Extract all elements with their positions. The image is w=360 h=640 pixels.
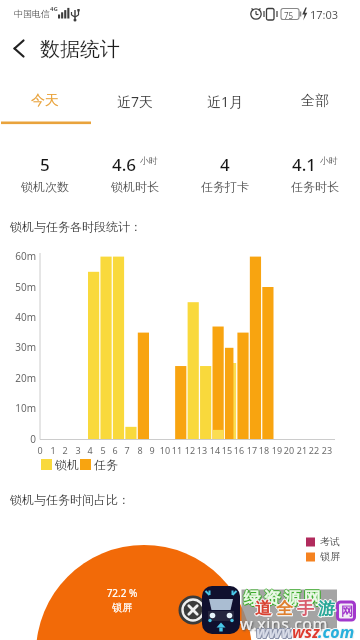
- staticText: wsz: [293, 622, 321, 640]
- staticText: 手: [298, 599, 315, 620]
- staticText: .com: [317, 621, 354, 640]
- staticText: 游: [319, 599, 336, 620]
- staticText: 手: [297, 599, 314, 620]
- button[interactable]: 今天: [0, 77, 90, 125]
- staticText: 2: [56, 444, 74, 456]
- staticText: 17:03: [310, 7, 339, 22]
- staticText: 4: [220, 153, 230, 176]
- staticText: 0: [31, 444, 49, 456]
- staticText: 全: [277, 599, 294, 620]
- staticText: 全部: [301, 92, 329, 110]
- staticText: w.xins.com: [240, 613, 328, 635]
- staticText: 绿资源网: [242, 589, 322, 610]
- staticText: 锁机与任务各时段统计：: [10, 219, 142, 234]
- staticText: 绿资源网: [243, 588, 323, 609]
- staticText: 锁机次数: [21, 179, 69, 194]
- staticText: www.: [255, 621, 297, 640]
- staticText: 30m: [4, 340, 36, 354]
- staticText: 60m: [4, 249, 36, 263]
- staticText: 小时: [140, 155, 158, 166]
- button[interactable]: 近7天: [90, 77, 180, 125]
- button[interactable]: 近1月: [180, 77, 270, 125]
- staticText: www.: [256, 622, 298, 640]
- staticText: 18: [255, 444, 273, 456]
- staticText: .com: [318, 622, 355, 640]
- staticText: 4: [81, 444, 99, 456]
- staticText: .com: [318, 621, 355, 640]
- staticText: www.: [256, 621, 298, 640]
- staticText: wsz: [292, 622, 320, 640]
- staticText: 23: [318, 444, 336, 456]
- staticText: 道: [255, 597, 272, 618]
- button[interactable]: [0, 25, 40, 73]
- staticText: wsz: [293, 621, 321, 640]
- staticText: 10: [156, 444, 174, 456]
- staticText: 22: [305, 444, 323, 456]
- staticText: 72.2 %: [94, 586, 150, 600]
- staticText: 12: [181, 444, 199, 456]
- staticText: 游: [318, 598, 335, 619]
- staticText: 任务打卡: [201, 179, 249, 194]
- staticText: 任务: [94, 457, 118, 472]
- staticText: 近1月: [207, 92, 244, 111]
- staticText: 道: [255, 598, 272, 619]
- staticText: 14: [206, 444, 224, 456]
- staticText: 游: [318, 599, 335, 620]
- staticText: 道: [255, 599, 272, 620]
- staticText: 4.1: [292, 153, 317, 176]
- staticText: 17: [243, 444, 261, 456]
- staticText: 3: [69, 444, 87, 456]
- staticText: 1: [44, 444, 62, 456]
- staticText: 全: [276, 598, 293, 619]
- staticText: 道: [256, 598, 273, 619]
- staticText: 任务时长: [291, 179, 339, 194]
- staticText: 道: [256, 599, 273, 620]
- staticText: 16: [230, 444, 248, 456]
- staticText: 绿资源网: [243, 589, 323, 610]
- staticText: 今天: [31, 92, 59, 110]
- staticText: 40m: [4, 310, 36, 324]
- staticText: 7: [118, 444, 136, 456]
- staticText: 数据统计: [40, 37, 120, 62]
- button[interactable]: 数据统计: [28, 25, 120, 73]
- staticText: www.: [257, 621, 299, 640]
- staticText: .com: [319, 621, 356, 640]
- staticText: .com: [319, 622, 356, 640]
- staticText: 全: [275, 598, 292, 619]
- staticText: 5: [94, 444, 112, 456]
- staticText: 小时: [320, 155, 338, 166]
- button[interactable]: 全部: [270, 77, 360, 125]
- staticText: 4.6: [112, 153, 137, 176]
- staticText: 绿资源网: [242, 588, 322, 609]
- staticText: 9: [143, 444, 161, 456]
- staticText: 手: [297, 597, 314, 618]
- staticText: 20m: [4, 371, 36, 385]
- staticText: wsz: [292, 621, 320, 640]
- staticText: 20: [280, 444, 298, 456]
- staticText: 游: [319, 598, 336, 619]
- staticText: 13: [193, 444, 211, 456]
- staticText: 网: [341, 603, 353, 618]
- staticText: 锁机: [55, 457, 79, 472]
- staticText: 19: [268, 444, 286, 456]
- staticText: 4G: [50, 5, 58, 13]
- staticText: www.: [256, 620, 298, 640]
- staticText: 15: [218, 444, 236, 456]
- staticText: 8: [131, 444, 149, 456]
- staticText: 锁屏: [320, 550, 340, 563]
- staticText: 75: [284, 10, 294, 21]
- staticText: 50m: [4, 280, 36, 294]
- staticText: wsz: [292, 620, 320, 640]
- staticText: 全: [277, 598, 294, 619]
- staticText: .com: [318, 620, 355, 640]
- staticText: 绿资源网: [242, 587, 322, 608]
- staticText: 近7天: [117, 92, 154, 111]
- staticText: 中国电信: [14, 8, 50, 19]
- staticText: 6: [106, 444, 124, 456]
- staticText: wsz: [291, 621, 319, 640]
- staticText: 手: [296, 598, 313, 619]
- staticText: 绿资源网: [241, 588, 321, 609]
- staticText: 考试: [320, 535, 340, 548]
- staticText: 10m: [4, 401, 36, 415]
- staticText: 21: [293, 444, 311, 456]
